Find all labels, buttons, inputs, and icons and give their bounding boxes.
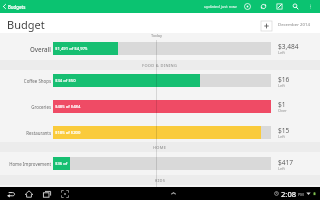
button[interactable]: $36 of $453 <box>53 157 271 170</box>
staticText: $185 of $200 <box>55 130 81 136</box>
button[interactable]: Back <box>2 187 20 200</box>
staticText: Restaurants <box>26 130 51 136</box>
staticText: Over <box>278 108 287 113</box>
button[interactable]: $34 of $50 <box>53 74 271 87</box>
button[interactable]: $417 <box>277 157 317 171</box>
button[interactable]: Home Improvement <box>0 157 51 170</box>
button[interactable]: December 2014 <box>278 21 310 27</box>
button[interactable]: Restaurants <box>0 126 51 139</box>
button[interactable]: $3,484 <box>277 41 317 55</box>
staticText: Left <box>278 83 285 88</box>
staticText: $15 <box>278 126 290 135</box>
button[interactable]: FOOD & DINING <box>0 60 320 70</box>
staticText: FOOD & DINING <box>142 63 178 68</box>
staticText: Today <box>151 33 163 38</box>
button[interactable]: $15 <box>277 125 317 139</box>
button[interactable]: $185 of $200 <box>53 126 271 139</box>
staticText: Left <box>278 134 285 139</box>
staticText: $3,484 <box>278 42 299 51</box>
staticText: Left <box>278 50 285 55</box>
button[interactable]: $1 <box>277 99 317 113</box>
button[interactable]: $1,491 of $4,975 <box>53 42 271 55</box>
button[interactable]: Search <box>289 0 302 13</box>
button[interactable]: Refresh <box>257 0 270 13</box>
staticText: $34 of $50 <box>55 78 76 84</box>
button[interactable]: $16 <box>277 74 317 88</box>
button[interactable]: HOME <box>0 142 320 152</box>
button[interactable]: Home <box>20 187 38 200</box>
staticText: Budget <box>7 17 45 32</box>
button[interactable]: Add budget <box>261 21 272 31</box>
staticText: Overall <box>29 45 51 53</box>
staticText: PM <box>298 192 304 197</box>
button[interactable]: Overall <box>0 42 51 55</box>
staticText: $36 of $453 <box>55 161 72 167</box>
staticText: Coffee Shops <box>23 78 51 84</box>
button[interactable]: Edit <box>273 0 286 13</box>
button[interactable]: $485 of $484 <box>53 100 271 113</box>
staticText: KIDS <box>155 178 166 183</box>
staticText: $1 <box>278 100 286 109</box>
staticText: $417 <box>278 158 294 167</box>
staticText: 2:08 <box>281 189 297 199</box>
button[interactable]: Budget overview <box>241 0 254 13</box>
staticText: $485 of $484 <box>55 104 81 110</box>
staticText: Budgets <box>8 4 26 10</box>
staticText: Left <box>278 166 285 171</box>
button[interactable]: More options <box>304 0 317 13</box>
staticText: updated just now <box>204 4 237 9</box>
button[interactable]: Coffee Shops <box>0 74 51 87</box>
button[interactable]: Recents <box>38 187 56 200</box>
staticText: Groceries <box>31 104 51 110</box>
button[interactable]: Screenshot <box>56 187 74 200</box>
button[interactable]: Groceries <box>0 100 51 113</box>
staticText: $1,491 of $4,975 <box>55 46 88 52</box>
button[interactable]: Budgets <box>0 0 30 13</box>
staticText: $16 <box>278 75 290 84</box>
staticText: HOME <box>153 145 167 150</box>
staticText: Home Improvement <box>9 161 51 167</box>
button[interactable]: KIDS <box>0 175 320 185</box>
